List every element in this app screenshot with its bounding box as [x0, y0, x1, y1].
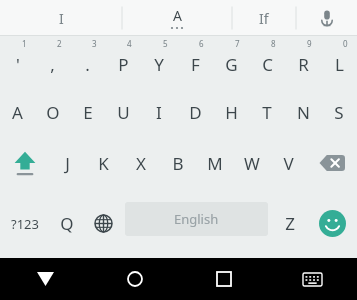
button[interactable]: Z [272, 189, 308, 258]
staticText: ?123 [11, 215, 39, 233]
button[interactable]: A [0, 87, 35, 137]
staticText: O [46, 101, 60, 124]
staticText: 2 [57, 38, 62, 49]
staticText: ' [16, 53, 20, 76]
button[interactable]: If [232, 0, 296, 36]
staticText: X [136, 152, 146, 175]
button[interactable]: O [35, 87, 70, 137]
staticText: T [262, 101, 272, 124]
button[interactable]: I [0, 0, 122, 36]
button[interactable]: J [49, 137, 85, 189]
staticText: , [50, 53, 55, 76]
button[interactable]: W [233, 137, 270, 189]
button[interactable]: 4 [105, 36, 141, 87]
staticText: If [259, 9, 269, 28]
button[interactable]: 0 [321, 36, 357, 87]
button[interactable]: 3 [70, 36, 105, 87]
staticText: E [83, 101, 93, 124]
staticText: A [173, 6, 182, 25]
button[interactable]: M [196, 137, 233, 189]
button[interactable]: U [105, 87, 141, 137]
button[interactable]: 5 [141, 36, 177, 87]
staticText: D [189, 101, 202, 124]
button[interactable]: 2 [35, 36, 70, 87]
button[interactable]: S [321, 87, 357, 137]
button[interactable]: I [141, 87, 177, 137]
staticText: N [297, 101, 310, 124]
staticText: Q [60, 212, 74, 235]
button[interactable]: A [122, 0, 232, 36]
staticText: H [225, 101, 238, 124]
staticText: 7 [235, 38, 240, 49]
staticText: I [156, 101, 162, 124]
button[interactable]: Back [0, 258, 90, 300]
staticText: 0 [343, 38, 348, 49]
button[interactable]: K [85, 137, 122, 189]
button[interactable]: Voice input [296, 0, 357, 36]
button[interactable]: X [122, 137, 159, 189]
button[interactable]: Q [49, 189, 85, 258]
button[interactable]: 9 [285, 36, 321, 87]
button[interactable]: D [177, 87, 213, 137]
button[interactable]: 1 [0, 36, 35, 87]
staticText: V [283, 152, 294, 175]
staticText: U [117, 101, 130, 124]
button[interactable]: 8 [249, 36, 285, 87]
staticText: 5 [163, 38, 168, 49]
button[interactable]: 6 [177, 36, 213, 87]
button[interactable]: B [159, 137, 196, 189]
staticText: 9 [307, 38, 312, 49]
button[interactable]: T [249, 87, 285, 137]
staticText: I [59, 9, 64, 28]
button[interactable]: Home [90, 258, 179, 300]
staticText: C [262, 53, 273, 76]
staticText: 3 [92, 38, 97, 49]
button[interactable]: Backspace [307, 137, 357, 189]
staticText: . [85, 53, 90, 76]
staticText: Y [154, 53, 164, 76]
staticText: P [118, 53, 129, 76]
staticText: K [98, 152, 109, 175]
staticText: M [207, 152, 223, 175]
staticText: English [174, 210, 219, 228]
staticText: A [12, 101, 23, 124]
staticText: J [65, 152, 70, 175]
button[interactable]: Emoji [308, 189, 357, 258]
button[interactable]: V [270, 137, 307, 189]
button[interactable]: Change language [85, 189, 121, 258]
staticText: F [191, 53, 200, 76]
button[interactable]: E [70, 87, 105, 137]
button[interactable]: English [125, 202, 268, 236]
button[interactable]: Shift [0, 137, 49, 189]
button[interactable]: Recent apps [179, 258, 268, 300]
staticText: 1 [22, 38, 27, 49]
staticText: L [335, 53, 344, 76]
button[interactable]: N [285, 87, 321, 137]
button[interactable]: 7 [213, 36, 249, 87]
staticText: 8 [271, 38, 276, 49]
button[interactable]: Switch keyboard [268, 258, 357, 300]
staticText: Z [285, 212, 295, 235]
staticText: B [172, 152, 184, 175]
staticText: 6 [199, 38, 204, 49]
staticText: W [244, 152, 260, 175]
staticText: S [334, 101, 344, 124]
staticText: R [298, 53, 309, 76]
button[interactable]: ?123 [0, 189, 49, 258]
staticText: G [225, 53, 238, 76]
button[interactable]: H [213, 87, 249, 137]
staticText: 4 [127, 38, 132, 49]
